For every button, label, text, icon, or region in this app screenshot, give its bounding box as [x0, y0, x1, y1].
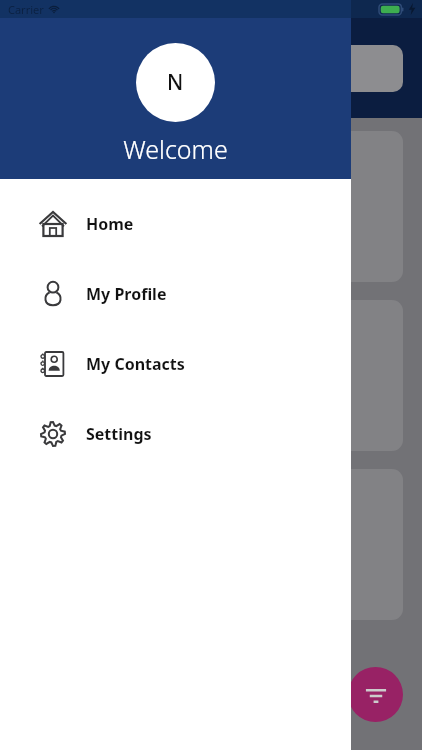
- button[interactable]: [19, 469, 403, 620]
- staticText: Home: [86, 213, 134, 235]
- button[interactable]: Home: [0, 189, 351, 259]
- button[interactable]: [36, 406, 121, 437]
- staticText: Carrier: [8, 2, 44, 17]
- button[interactable]: My Contacts: [0, 329, 351, 399]
- staticText: My Profile: [86, 283, 167, 305]
- staticText: Welcome: [123, 132, 228, 166]
- staticText: Settings: [86, 423, 152, 445]
- button[interactable]: [19, 300, 403, 451]
- button[interactable]: Search: [19, 45, 403, 92]
- button[interactable]: Filter: [348, 667, 403, 722]
- button[interactable]: Settings: [0, 399, 351, 469]
- staticText: My Contacts: [86, 353, 185, 375]
- staticText: N: [167, 68, 184, 97]
- button[interactable]: My Profile: [0, 259, 351, 329]
- button[interactable]: [19, 131, 403, 282]
